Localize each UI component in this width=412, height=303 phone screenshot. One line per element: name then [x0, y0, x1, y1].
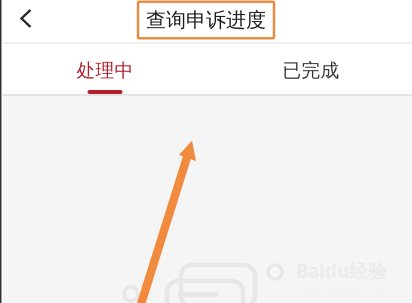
button[interactable]: 处理中	[0, 44, 206, 94]
button[interactable]: Back	[5, 0, 47, 39]
staticText: 已完成	[282, 59, 339, 82]
staticText: Baidu经验	[296, 258, 387, 283]
staticText: 处理中	[76, 59, 133, 82]
button[interactable]: 已完成	[206, 44, 412, 94]
staticText: 查询申诉进度	[146, 8, 266, 32]
